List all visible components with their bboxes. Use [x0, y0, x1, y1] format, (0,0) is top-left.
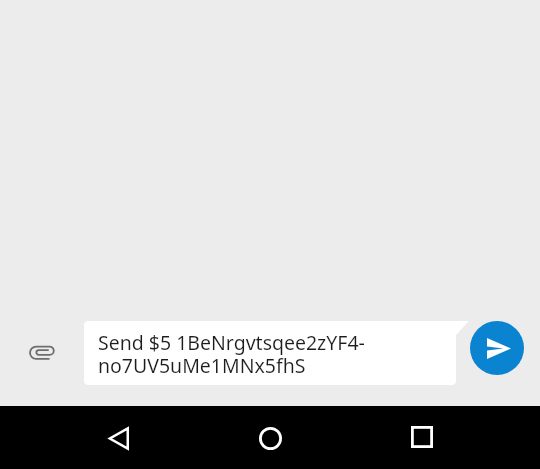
button[interactable]: Recent apps: [396, 412, 448, 464]
button[interactable]: Back: [92, 412, 144, 464]
button[interactable]: Attach file: [14, 328, 70, 378]
staticText: Send $5 1BeNrgvtsqee2zYF4- no7UV5uMe1MNx…: [98, 329, 365, 379]
button[interactable]: Home: [244, 412, 296, 464]
button[interactable]: Send $5 1BeNrgvtsqee2zYF4- no7UV5uMe1MNx…: [84, 321, 469, 385]
button[interactable]: Send: [470, 321, 524, 375]
